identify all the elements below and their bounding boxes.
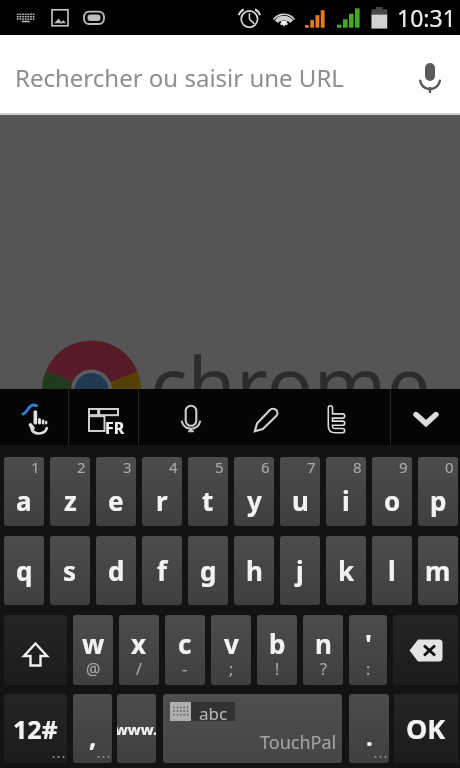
button[interactable]: q <box>4 536 44 605</box>
button[interactable]: v <box>211 615 251 685</box>
staticText: p <box>430 483 447 518</box>
staticText: 1 <box>31 457 40 477</box>
staticText: i <box>342 483 350 518</box>
button[interactable]: Symbols <box>289 389 390 445</box>
staticText: OK <box>406 710 446 747</box>
staticText: - <box>182 658 188 680</box>
staticText: t <box>202 483 214 518</box>
button[interactable]: x <box>119 615 159 685</box>
button[interactable]: Voice input <box>139 389 243 445</box>
staticText: FR <box>105 417 125 439</box>
staticText: Rechercher ou saisir une URL <box>15 61 344 94</box>
button[interactable]: l <box>372 536 412 605</box>
staticText: 10:31 <box>397 2 456 33</box>
staticText: 3 <box>123 457 132 477</box>
staticText: a <box>16 483 32 518</box>
button[interactable]: 3 <box>96 457 136 526</box>
staticText: r <box>156 483 168 518</box>
button[interactable]: g <box>188 536 228 605</box>
button[interactable]: 6 <box>234 457 274 526</box>
button[interactable]: abc <box>163 694 342 763</box>
button[interactable]: h <box>234 536 274 605</box>
staticText: : <box>366 658 371 680</box>
button[interactable]: s <box>50 536 90 605</box>
staticText: / <box>136 658 142 680</box>
staticText: v <box>224 626 239 661</box>
staticText: w <box>82 626 105 661</box>
button[interactable]: k <box>326 536 366 605</box>
staticText: s <box>63 553 77 588</box>
button[interactable]: www. <box>117 694 156 763</box>
button[interactable]: Voice search <box>400 35 460 113</box>
button[interactable]: Backspace <box>393 615 458 685</box>
staticText: chrome <box>150 331 431 437</box>
staticText: ; <box>229 658 234 680</box>
button[interactable]: 1 <box>4 457 44 526</box>
staticText: @ <box>86 658 101 680</box>
button[interactable]: Collapse keyboard <box>391 389 460 445</box>
button[interactable]: 0 <box>418 457 458 526</box>
button[interactable]: OK <box>394 694 458 763</box>
staticText: ! <box>275 658 280 680</box>
button[interactable]: Rechercher ou saisir une URL <box>0 35 460 113</box>
staticText: x <box>131 626 147 661</box>
staticText: l <box>388 553 396 588</box>
staticText: z <box>64 483 77 518</box>
staticText: d <box>108 553 125 588</box>
button[interactable]: 12# <box>4 694 67 763</box>
staticText: y <box>247 483 262 518</box>
button[interactable]: c <box>165 615 205 685</box>
staticText: ? <box>320 658 327 680</box>
button[interactable]: j <box>280 536 320 605</box>
button[interactable]: 4 <box>142 457 182 526</box>
button[interactable]: 8 <box>326 457 366 526</box>
staticText: 5 <box>215 457 224 477</box>
button[interactable]: 9 <box>372 457 412 526</box>
staticText: k <box>338 553 355 588</box>
staticText: abc <box>199 702 228 721</box>
staticText: ' <box>365 626 372 661</box>
button[interactable]: . <box>349 694 389 763</box>
staticText: o <box>384 483 401 518</box>
button[interactable]: Handwriting <box>243 389 289 445</box>
staticText: 7 <box>307 457 316 477</box>
button[interactable]: Swipe input <box>0 389 68 445</box>
button[interactable]: f <box>142 536 182 605</box>
staticText: 12# <box>13 712 58 746</box>
staticText: e <box>108 483 124 518</box>
staticText: g <box>200 553 217 588</box>
staticText: www. <box>117 719 156 739</box>
button[interactable]: b <box>257 615 297 685</box>
button[interactable]: 7 <box>280 457 320 526</box>
staticText: 8 <box>353 457 362 477</box>
button[interactable]: , <box>73 694 112 763</box>
button[interactable]: 2 <box>50 457 90 526</box>
button[interactable]: n <box>303 615 343 685</box>
button[interactable]: Shift <box>4 615 67 685</box>
button[interactable]: Keyboard layout FR <box>69 389 138 445</box>
button[interactable]: ' <box>349 615 387 685</box>
staticText: j <box>296 553 304 588</box>
staticText: TouchPal <box>260 730 337 755</box>
staticText: 9 <box>399 457 408 477</box>
staticText: q <box>16 553 33 588</box>
staticText: h <box>246 553 263 588</box>
staticText: 4 <box>169 457 178 477</box>
staticText: m <box>425 553 451 588</box>
staticText: u <box>292 483 309 518</box>
staticText: c <box>178 626 192 661</box>
staticText: . <box>366 720 373 753</box>
staticText: b <box>269 626 286 661</box>
staticText: 6 <box>261 457 270 477</box>
staticText: , <box>89 719 97 754</box>
staticText: f <box>157 553 168 588</box>
staticText: 2 <box>77 457 86 477</box>
staticText: n <box>315 626 332 661</box>
staticText: 0 <box>445 457 454 477</box>
button[interactable]: m <box>418 536 458 605</box>
button[interactable]: 5 <box>188 457 228 526</box>
button[interactable]: d <box>96 536 136 605</box>
button[interactable]: w <box>73 615 113 685</box>
